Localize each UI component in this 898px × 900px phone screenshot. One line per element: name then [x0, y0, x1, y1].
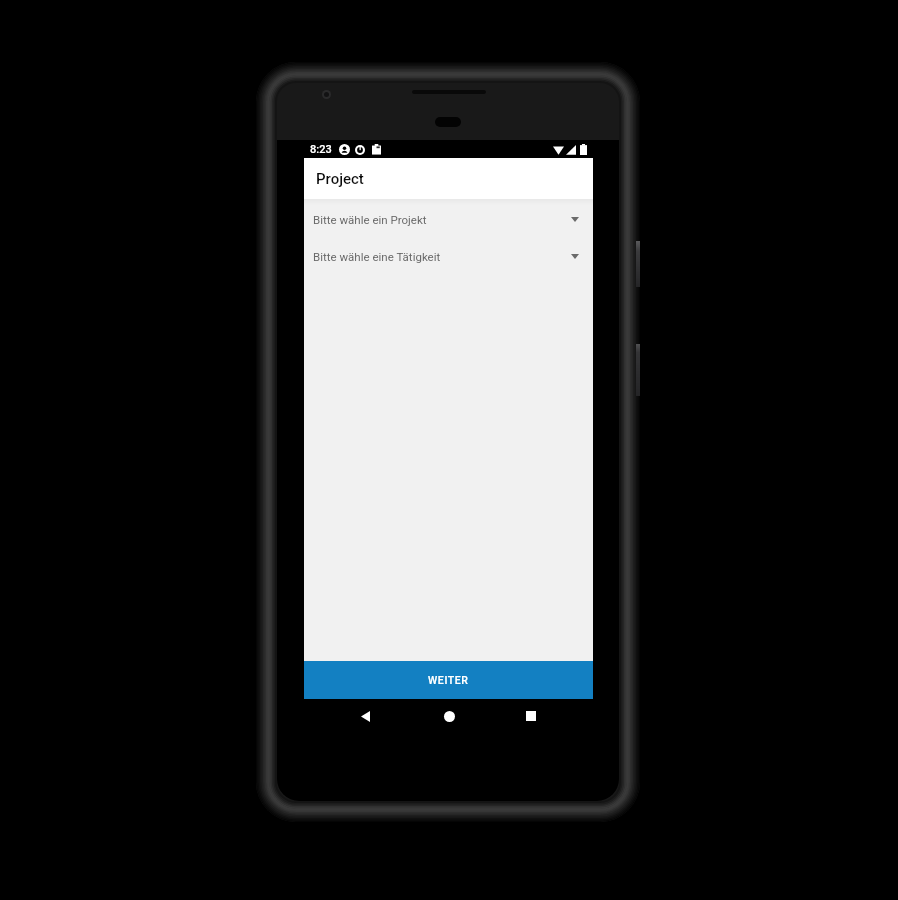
staticText: Bitte wähle ein Projekt [313, 213, 427, 226]
button[interactable]: Recent apps [514, 699, 548, 733]
staticText: WEITER [428, 674, 469, 686]
button[interactable]: Back [348, 699, 382, 733]
staticText: Project [316, 170, 364, 188]
button[interactable]: Bitte wähle eine Tätigkeit [304, 238, 593, 275]
staticText: Bitte wähle eine Tätigkeit [313, 250, 441, 263]
staticText: 8:23 [310, 143, 332, 156]
button[interactable]: Bitte wähle ein Projekt [304, 201, 593, 238]
button[interactable]: WEITER [304, 661, 593, 699]
button[interactable]: Home [432, 699, 466, 733]
